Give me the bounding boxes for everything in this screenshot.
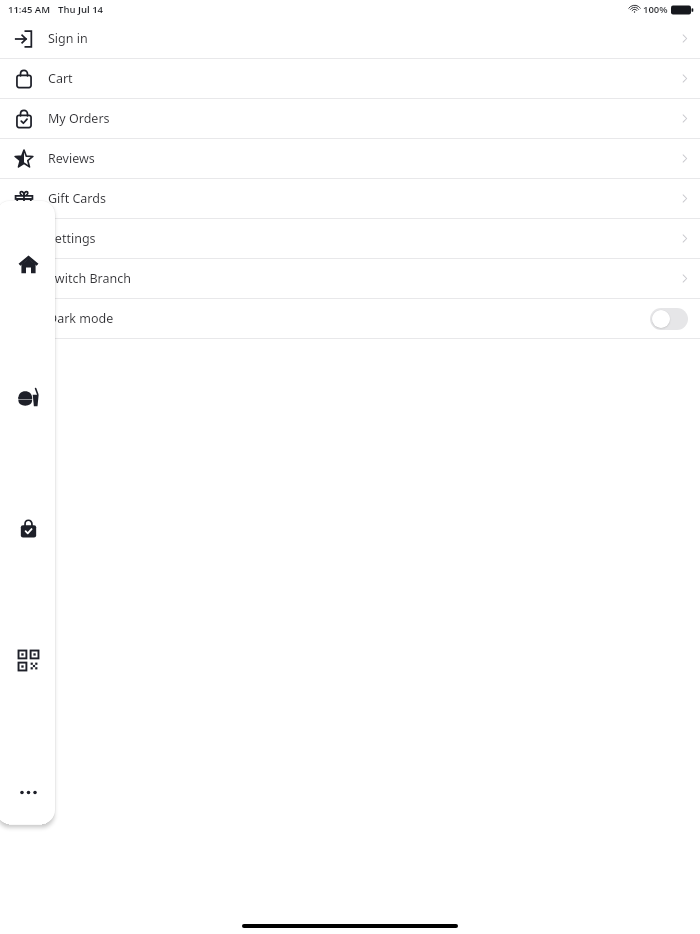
button[interactable]: Cart (0, 59, 700, 99)
button[interactable]: Food menu (11, 380, 45, 414)
button[interactable]: Reviews (0, 139, 700, 179)
staticText: Sign in (48, 30, 88, 47)
button[interactable]: More options (11, 775, 45, 809)
button[interactable]: Dark mode toggle (650, 308, 688, 330)
staticText: Switch Branch (48, 270, 131, 287)
button[interactable]: Orders (11, 511, 45, 545)
staticText: Dark mode (48, 310, 114, 327)
button[interactable]: Gift Cards (0, 179, 700, 219)
staticText: Reviews (48, 150, 95, 167)
button[interactable]: Switch Branch (0, 259, 700, 299)
button[interactable]: Dark mode (0, 299, 700, 339)
staticText: Cart (48, 70, 73, 87)
staticText: 100% (643, 3, 668, 16)
staticText: 11:45 AM (8, 3, 51, 16)
button[interactable]: Home (11, 247, 45, 281)
button[interactable]: My Orders (0, 99, 700, 139)
staticText: Settings (48, 230, 96, 247)
staticText: Thu Jul 14 (58, 3, 104, 16)
button[interactable]: Scan QR code (11, 643, 45, 677)
staticText: My Orders (48, 110, 110, 127)
staticText: Gift Cards (48, 190, 106, 207)
button[interactable]: Sign in (0, 19, 700, 59)
button[interactable]: Settings (0, 219, 700, 259)
